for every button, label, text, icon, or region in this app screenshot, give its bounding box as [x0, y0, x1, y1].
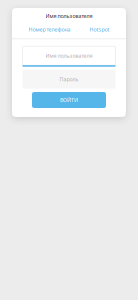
button[interactable]: Hotspot	[89, 26, 109, 33]
staticText: Номер телефона	[28, 26, 70, 33]
button[interactable]: Номер телефона	[28, 26, 70, 33]
button[interactable]: ВОЙТИ	[32, 92, 106, 108]
staticText: Пароль	[59, 76, 78, 83]
staticText: ВОЙТИ	[60, 96, 78, 104]
staticText: Hotspot	[89, 26, 109, 33]
staticText: Имя пользователя	[45, 12, 92, 20]
staticText: Имя пользователя	[45, 52, 92, 59]
